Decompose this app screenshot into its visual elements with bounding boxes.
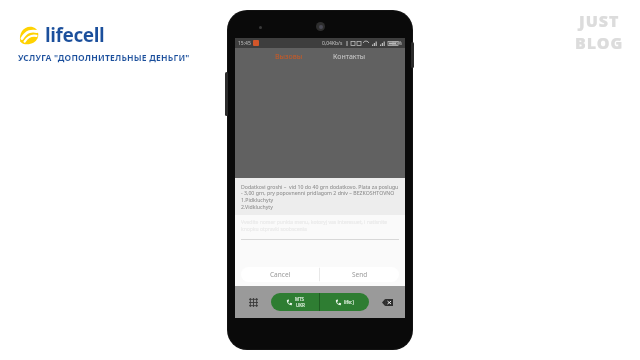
staticText: Dodatkovi groshi – vid 10 do 40 grn doda… <box>241 183 399 211</box>
staticText: Send <box>352 270 368 279</box>
button[interactable]: life:) <box>320 293 369 311</box>
staticText: Vvedite nomer punkta menu, kotoryj vas i… <box>241 219 399 233</box>
button[interactable]: Dialpad <box>245 294 261 310</box>
staticText: MTS <box>295 296 305 302</box>
staticText: lifecell <box>45 22 105 48</box>
staticText: life:) <box>344 299 354 306</box>
button[interactable]: Send <box>320 267 399 282</box>
staticText: Вызовы <box>275 52 303 62</box>
staticText: УСЛУГА "ДОПОЛНИТЕЛЬНЫЕ ДЕНЬГИ" <box>18 52 190 64</box>
staticText: 85% <box>392 40 402 47</box>
button[interactable]: Backspace <box>379 294 395 310</box>
staticText: JUST <box>579 10 620 32</box>
button[interactable]: Cancel <box>241 267 319 282</box>
button[interactable]: Контакты <box>323 49 376 65</box>
button[interactable]: Вызовы <box>265 49 313 65</box>
staticText: BLOG <box>575 32 624 54</box>
staticText: Контакты <box>333 52 366 62</box>
staticText: UKR <box>296 302 305 308</box>
staticText: 0,04Kb/s <box>322 40 343 47</box>
staticText: Cancel <box>270 270 291 279</box>
staticText: 15:45 <box>238 40 251 47</box>
button[interactable]: MTS <box>271 293 319 311</box>
